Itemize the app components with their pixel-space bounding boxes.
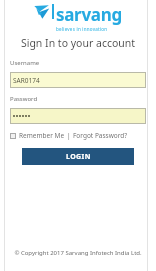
staticText: | [67,131,71,140]
button[interactable]: LOGIN [22,148,134,165]
button[interactable]: Remember Me checkbox [10,133,16,139]
staticText: © Copyright 2017 Sarvang Infotech India … [0,249,156,257]
staticText: Username [10,59,40,67]
staticText: SAR0174 [13,76,40,85]
staticText: Remember Me [19,131,65,140]
button[interactable] [10,108,146,124]
staticText: Forgot Password? [73,131,128,140]
button[interactable]: Forgot Password? [73,131,128,140]
button[interactable]: SAR0174 [10,72,146,88]
staticText: Sign In to your account [0,36,156,50]
staticText: LOGIN [66,152,91,162]
button[interactable]: Remember Me [19,131,65,140]
staticText: believes in innovation [56,26,108,32]
staticText: sarvang [56,3,122,26]
staticText: Password [10,95,38,103]
